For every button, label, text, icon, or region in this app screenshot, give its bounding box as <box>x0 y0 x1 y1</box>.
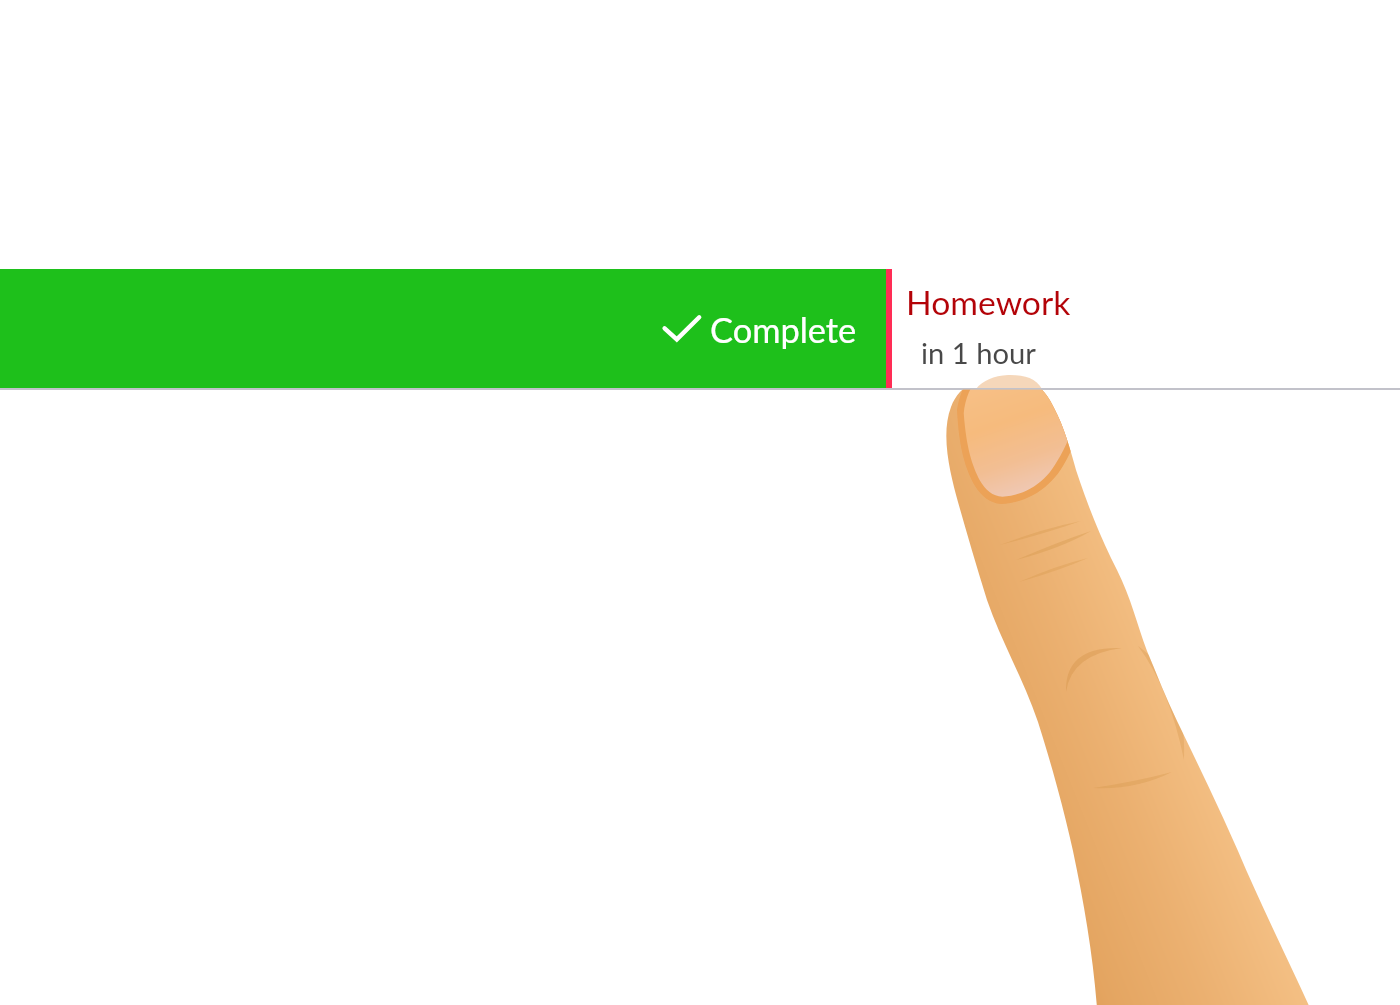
button[interactable]: Complete task <box>0 269 886 388</box>
button[interactable]: Complete task <box>0 269 1400 388</box>
staticText: in 1 hour <box>921 335 1036 370</box>
staticText: Homework <box>906 282 1071 322</box>
staticText: Complete <box>710 309 857 350</box>
